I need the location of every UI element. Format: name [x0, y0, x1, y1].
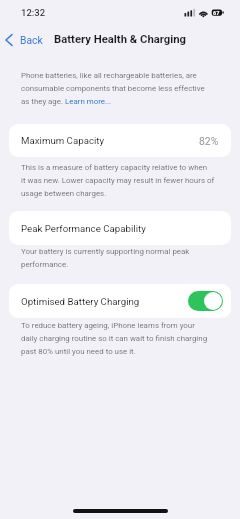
staticText: 67 — [213, 10, 220, 17]
button[interactable]: Maximum Capacity — [9, 124, 231, 157]
staticText: Maximum Capacity — [21, 135, 105, 146]
staticText: To reduce battery ageing, iPhone learns … — [21, 321, 208, 356]
button[interactable]: Back — [0, 31, 43, 49]
staticText: Phone batteries, like all rechargeable b… — [21, 71, 205, 106]
staticText: Battery Health & Charging — [54, 33, 187, 46]
staticText: Optimised Battery Charging — [21, 296, 140, 307]
staticText: 82% — [199, 135, 219, 147]
staticText: Peak Performance Capability — [21, 223, 146, 234]
staticText: Your battery is currently supporting nor… — [21, 247, 190, 269]
staticText: Back — [20, 34, 43, 46]
button[interactable]: Peak Performance Capability — [9, 211, 231, 245]
button[interactable]: Optimised Battery Charging toggle — [188, 291, 223, 311]
staticText: 12:32 — [21, 7, 46, 18]
staticText: This is a measure of battery capacity re… — [21, 163, 215, 198]
